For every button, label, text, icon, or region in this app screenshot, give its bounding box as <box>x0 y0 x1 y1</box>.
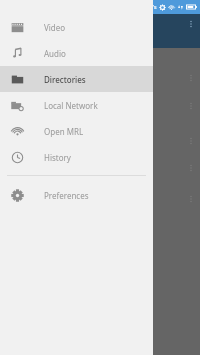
button[interactable]: Local Network <box>0 92 153 118</box>
staticText: Audio <box>44 48 66 59</box>
button[interactable]: Audio <box>0 40 153 66</box>
button[interactable]: Video <box>0 14 153 40</box>
staticText: Preferences <box>44 190 89 201</box>
button[interactable]: History <box>0 144 153 170</box>
staticText: Video <box>44 22 66 33</box>
staticText: Open MRL <box>44 126 84 137</box>
button[interactable]: Open MRL <box>0 118 153 144</box>
button[interactable]: More options <box>185 18 197 30</box>
staticText: Local Network <box>44 100 98 111</box>
button[interactable]: Directories <box>0 66 153 92</box>
staticText: History <box>44 152 71 163</box>
staticText: 0.94K/s <box>136 3 157 11</box>
button[interactable]: Preferences <box>0 182 153 208</box>
staticText: Directories <box>44 74 86 85</box>
